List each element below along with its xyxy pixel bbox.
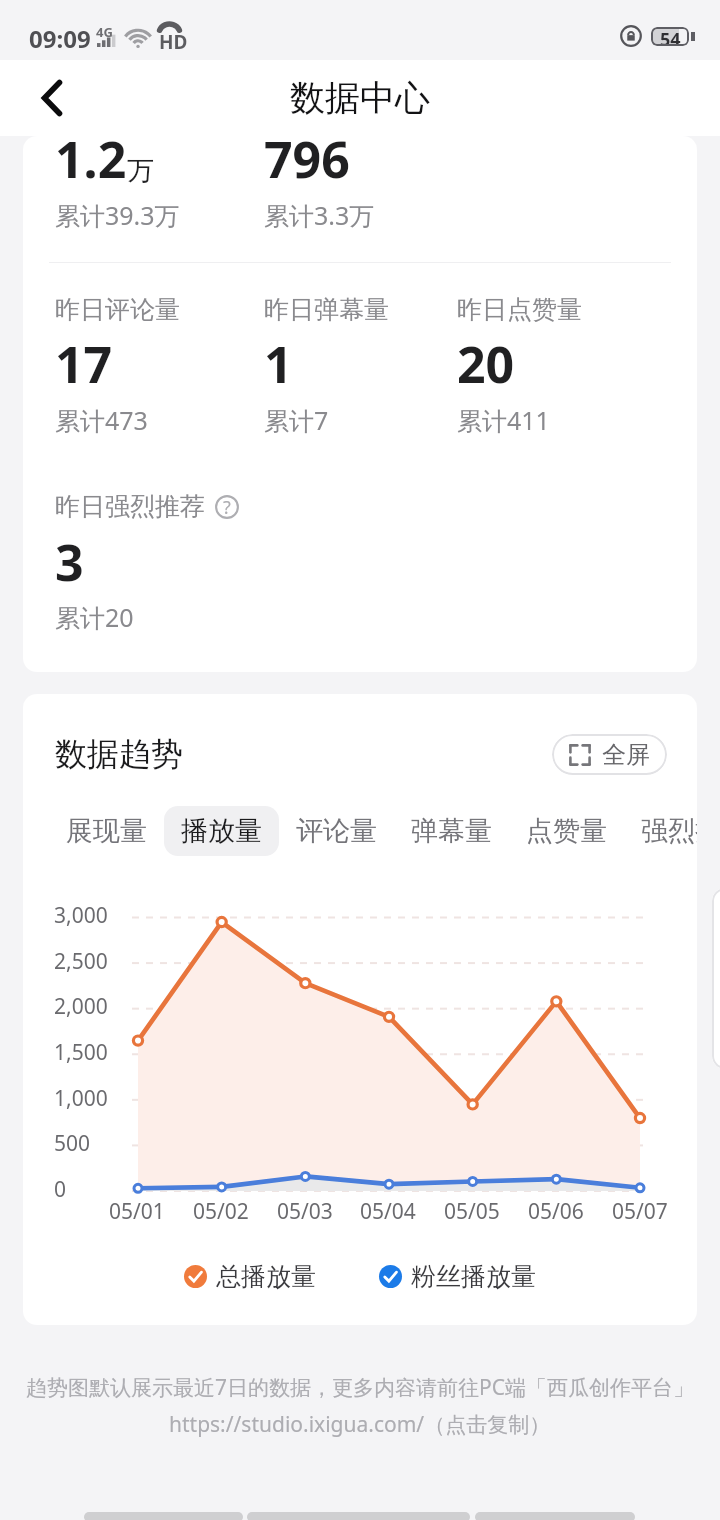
button[interactable]: 总播放量: [184, 1261, 316, 1292]
button[interactable]: 点赞量: [509, 806, 624, 856]
staticText: 累计20: [55, 600, 134, 634]
button[interactable]: 展现量: [49, 806, 164, 856]
staticText: 1,500: [54, 1038, 108, 1067]
staticText: 54: [660, 27, 681, 46]
staticText: 3,000: [54, 901, 108, 930]
staticText: 0: [54, 1175, 67, 1204]
staticText: 05/03: [277, 1197, 333, 1226]
staticText: 20: [457, 330, 515, 398]
staticText: 昨日强烈推荐: [55, 491, 205, 522]
staticText: 累计39.3万: [55, 198, 180, 232]
staticText: 2,500: [54, 947, 108, 976]
staticText: 累计473: [55, 403, 148, 437]
button[interactable]: 全屏: [552, 734, 667, 775]
staticText: 500: [54, 1129, 91, 1158]
staticText: 昨日弹幕量: [264, 294, 389, 325]
button[interactable]: https://studio.ixigua.com/（点击复制）: [169, 1410, 551, 1439]
staticText: 累计7: [264, 403, 329, 437]
staticText: 05/02: [193, 1197, 249, 1226]
staticText: 趋势图默认展示最近7日的数据，更多内容请前往PC端「西瓜创作平台」: [26, 1373, 694, 1402]
staticText: 09:09: [29, 22, 91, 55]
staticText: 3: [55, 528, 84, 596]
staticText: 累计411: [457, 403, 550, 437]
staticText: 展现量: [66, 814, 147, 848]
staticText: 1.2: [55, 136, 127, 193]
button[interactable]: 弹幕量: [394, 806, 509, 856]
button[interactable]: Back: [84, 1512, 243, 1520]
button[interactable]: 强烈推荐: [624, 806, 697, 856]
staticText: 05/04: [360, 1197, 416, 1226]
staticText: 05/06: [528, 1197, 584, 1226]
button[interactable]: Back: [14, 60, 90, 136]
staticText: 累计3.3万: [264, 198, 375, 232]
staticText: 2,000: [54, 992, 108, 1021]
staticText: 播放量: [181, 814, 262, 848]
staticText: 全屏: [602, 740, 650, 770]
staticText: 点赞量: [526, 814, 607, 848]
staticText: 昨日评论量: [55, 294, 180, 325]
staticText: 弹幕量: [411, 814, 492, 848]
staticText: 1,000: [54, 1084, 108, 1113]
staticText: 05/05: [444, 1197, 500, 1226]
staticText: 796: [264, 136, 350, 193]
button[interactable]: 粉丝播放量: [379, 1261, 536, 1292]
staticText: 强烈推荐: [641, 814, 697, 848]
staticText: 数据中心: [290, 76, 430, 120]
staticText: ?: [223, 495, 231, 519]
staticText: 评论量: [296, 814, 377, 848]
button[interactable]: 评论量: [279, 806, 394, 856]
button[interactable]: Side panel: [712, 888, 720, 1069]
staticText: 17: [55, 330, 113, 398]
staticText: 1: [264, 330, 293, 398]
staticText: HD: [159, 29, 188, 55]
button[interactable]: Recents: [475, 1512, 635, 1520]
staticText: 粉丝播放量: [411, 1261, 536, 1292]
staticText: 昨日点赞量: [457, 294, 582, 325]
staticText: 05/07: [612, 1197, 668, 1226]
button[interactable]: 播放量: [164, 806, 279, 856]
staticText: 4G: [96, 23, 113, 41]
staticText: 05/01: [109, 1197, 165, 1226]
staticText: 数据趋势: [55, 734, 183, 774]
staticText: 万: [127, 154, 154, 188]
staticText: 总播放量: [216, 1261, 316, 1292]
